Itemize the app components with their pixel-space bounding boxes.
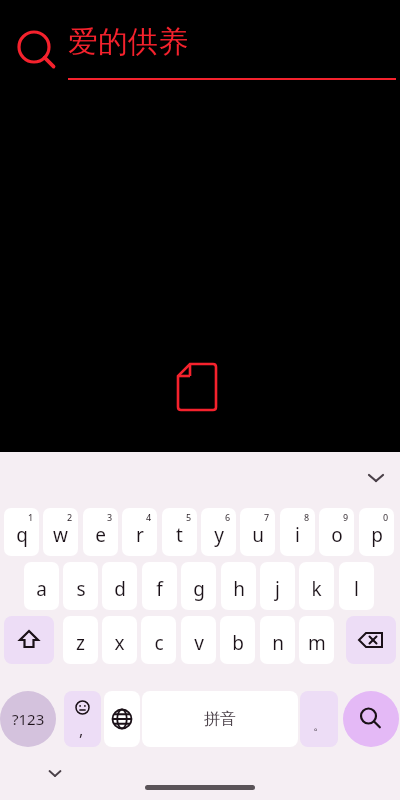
button[interactable]: d <box>102 562 137 610</box>
staticText: r <box>136 522 144 548</box>
staticText: a <box>36 576 47 602</box>
staticText: e <box>95 522 106 548</box>
staticText: i <box>295 522 300 548</box>
button[interactable]: h <box>221 562 256 610</box>
staticText: 5 <box>186 511 192 523</box>
button[interactable]: l <box>339 562 374 610</box>
staticText: x <box>114 630 125 656</box>
button[interactable]: Search <box>10 22 60 72</box>
button[interactable]: Emoji and comma <box>64 691 101 747</box>
button[interactable]: g <box>181 562 216 610</box>
button[interactable]: k <box>299 562 334 610</box>
staticText: z <box>76 630 85 656</box>
button[interactable]: s <box>63 562 98 610</box>
staticText: 4 <box>146 511 152 523</box>
staticText: w <box>53 522 68 548</box>
staticText: m <box>308 630 326 656</box>
staticText: q <box>16 522 28 548</box>
button[interactable]: b <box>220 616 255 664</box>
button[interactable]: w <box>43 508 78 556</box>
button[interactable]: 拼音 <box>142 691 298 747</box>
staticText: y <box>214 522 224 548</box>
staticText: 9 <box>343 511 349 523</box>
other: No results <box>175 363 225 413</box>
button[interactable]: p <box>359 508 394 556</box>
staticText: 8 <box>304 511 310 523</box>
staticText: s <box>76 576 86 602</box>
button[interactable]: Shift <box>4 616 54 664</box>
button[interactable]: y <box>201 508 236 556</box>
button[interactable]: i <box>280 508 315 556</box>
staticText: 爱的供养 <box>68 23 188 61</box>
staticText: 7 <box>264 511 270 523</box>
staticText: d <box>114 576 126 602</box>
button[interactable]: u <box>240 508 275 556</box>
staticText: h <box>233 576 245 602</box>
staticText: 3 <box>107 511 113 523</box>
button[interactable]: e <box>83 508 118 556</box>
button[interactable]: Change language <box>104 691 140 747</box>
staticText: k <box>311 576 322 602</box>
button[interactable]: n <box>260 616 295 664</box>
button[interactable]: Search <box>0 0 400 92</box>
staticText: n <box>272 630 284 656</box>
button[interactable]: v <box>181 616 216 664</box>
button[interactable]: t <box>162 508 197 556</box>
button[interactable]: Back <box>42 761 68 787</box>
button[interactable]: m <box>299 616 334 664</box>
button[interactable]: j <box>260 562 295 610</box>
staticText: j <box>275 576 280 602</box>
staticText: , <box>79 719 84 741</box>
staticText: p <box>371 522 383 548</box>
staticText: c <box>154 630 164 656</box>
staticText: v <box>194 630 204 656</box>
staticText: 1 <box>28 511 34 523</box>
button[interactable]: o <box>319 508 354 556</box>
button[interactable]: a <box>24 562 59 610</box>
button[interactable]: ?123 <box>0 691 56 747</box>
staticText: 0 <box>383 511 389 523</box>
button[interactable]: c <box>141 616 176 664</box>
staticText: 拼音 <box>204 709 236 729</box>
staticText: t <box>176 522 183 548</box>
staticText: f <box>156 576 163 602</box>
staticText: l <box>354 576 359 602</box>
staticText: 。 <box>313 717 326 733</box>
button[interactable]: x <box>102 616 137 664</box>
staticText: g <box>193 576 205 602</box>
button[interactable]: Search <box>343 691 399 747</box>
staticText: 6 <box>225 511 231 523</box>
button[interactable]: 。 <box>300 691 338 747</box>
button[interactable]: q <box>4 508 39 556</box>
staticText: 2 <box>67 511 73 523</box>
staticText: b <box>232 630 244 656</box>
button[interactable]: z <box>63 616 98 664</box>
button[interactable]: Hide keyboard <box>360 462 392 494</box>
button[interactable]: Backspace <box>346 616 396 664</box>
staticText: u <box>252 522 264 548</box>
button[interactable]: f <box>142 562 177 610</box>
staticText: o <box>331 522 343 548</box>
staticText: ?123 <box>12 709 45 729</box>
button[interactable]: r <box>122 508 157 556</box>
